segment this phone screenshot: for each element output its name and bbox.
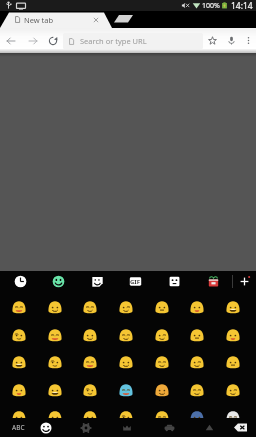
button[interactable]: Reload — [43, 28, 63, 53]
button[interactable]: Add — [233, 271, 256, 292]
button[interactable]: Activities — [110, 418, 144, 437]
button[interactable]: Close tab — [88, 12, 104, 28]
button[interactable]: Emoji — [108, 404, 143, 418]
button[interactable]: Back — [0, 28, 22, 53]
button[interactable]: Emoji — [1, 294, 36, 321]
button[interactable]: Settings — [69, 418, 103, 437]
staticText: ABC — [12, 423, 25, 432]
button[interactable]: Emoji — [108, 377, 143, 404]
button[interactable]: Emoji — [72, 294, 107, 321]
button[interactable]: New tab — [113, 11, 137, 28]
button[interactable]: Emoji — [37, 322, 72, 349]
button[interactable]: Backspace — [223, 418, 256, 437]
button[interactable]: Emoji — [37, 349, 72, 376]
button[interactable]: smiley — [42, 271, 74, 292]
button[interactable]: Emoji — [215, 349, 250, 376]
staticText: New tab — [24, 15, 54, 25]
button[interactable]: gif — [119, 271, 151, 292]
button[interactable]: Emoji — [37, 377, 72, 404]
button[interactable]: Emoji — [179, 294, 214, 321]
button[interactable]: gift — [197, 271, 229, 292]
button[interactable]: Emoji — [1, 377, 36, 404]
button[interactable]: Emoji — [144, 294, 179, 321]
button[interactable]: Voice search — [222, 28, 241, 53]
button[interactable]: Emoji — [144, 322, 179, 349]
button[interactable]: Emoji — [108, 349, 143, 376]
button[interactable]: Emoji — [144, 349, 179, 376]
button[interactable]: Emoji — [179, 349, 214, 376]
button[interactable]: Emoji — [72, 404, 107, 418]
button[interactable]: Emoji — [37, 294, 72, 321]
button[interactable]: Emoji — [179, 322, 214, 349]
button[interactable]: Symbols — [192, 418, 226, 437]
button[interactable]: Emoji — [72, 377, 107, 404]
staticText: Search or type URL — [80, 36, 147, 46]
button[interactable]: More options — [241, 28, 256, 53]
button[interactable]: Forward — [22, 28, 43, 53]
button[interactable]: Emoji — [37, 404, 72, 418]
button[interactable]: Emoji — [144, 404, 179, 418]
button[interactable]: Emoji — [179, 404, 214, 418]
button[interactable]: Emoji — [179, 377, 214, 404]
button[interactable]: Emoji — [1, 322, 36, 349]
button[interactable]: Search or type URL — [63, 33, 203, 49]
button[interactable]: Smileys — [29, 418, 63, 437]
button[interactable]: Emoji — [108, 322, 143, 349]
staticText: 100% — [202, 1, 220, 11]
button[interactable]: Emoji — [215, 294, 250, 321]
button[interactable]: Emoji — [1, 404, 36, 418]
staticText: 14:14 — [231, 0, 253, 11]
button[interactable]: Travel — [152, 418, 186, 437]
button[interactable]: Emoji — [144, 377, 179, 404]
button[interactable]: Emoji — [215, 377, 250, 404]
staticText: GIF — [130, 278, 140, 286]
button[interactable]: Emoji — [108, 294, 143, 321]
button[interactable]: sticker — [81, 271, 113, 292]
button[interactable]: clock — [4, 271, 36, 292]
button[interactable]: ABC — [1, 418, 35, 437]
button[interactable]: Emoji — [215, 322, 250, 349]
button[interactable]: Emoji — [1, 349, 36, 376]
button[interactable]: face — [158, 271, 190, 292]
button[interactable]: Emoji — [215, 404, 250, 418]
button[interactable]: Emoji — [72, 349, 107, 376]
button[interactable]: Emoji — [72, 322, 107, 349]
button[interactable]: Bookmark — [203, 28, 222, 53]
